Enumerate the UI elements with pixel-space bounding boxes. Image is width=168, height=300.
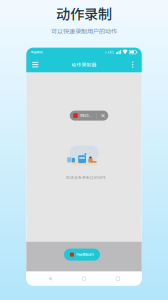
button[interactable]: Back [40,272,60,285]
button[interactable]: More options [125,57,140,73]
button[interactable]: 开始录制动作 [64,249,100,261]
staticText: 3.4K/s [105,50,114,54]
button[interactable]: Recents [108,272,128,285]
staticText: 中国移动 [31,50,43,54]
staticText: 动作录制器 [71,61,96,68]
staticText: 录制中... [80,113,92,118]
button[interactable]: 录制中... [70,111,108,121]
staticText: 动作录制 [56,3,112,24]
button[interactable]: Home [74,272,94,285]
button[interactable]: Menu [28,57,43,73]
staticText: 可以快速录制用户的动作 [51,27,117,36]
staticText: 开始录制动作 [76,252,94,257]
staticText: 您还没有录制过的动作 [66,175,106,180]
